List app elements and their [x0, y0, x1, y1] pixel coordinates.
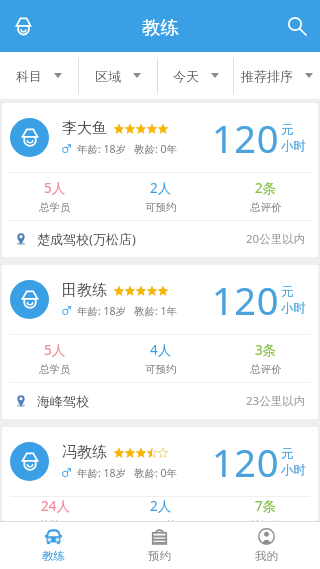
staticText: 海峰驾校 [37, 393, 89, 409]
staticText: 冯教练 [62, 443, 107, 462]
staticText: 总学员 [39, 363, 71, 376]
staticText: 2人 [150, 497, 172, 515]
staticText: 元 [281, 284, 294, 300]
button[interactable]: 2条 [213, 173, 318, 220]
staticText: 推荐排序 [241, 68, 293, 84]
staticText: 小时 [281, 138, 306, 154]
staticText: 年龄: 18岁 [77, 304, 127, 318]
staticText: 科目 [16, 68, 42, 84]
button[interactable]: 今天 [158, 52, 233, 99]
staticText: 120 [212, 274, 280, 326]
button[interactable]: 5人 [2, 173, 108, 220]
staticText: 2人 [150, 179, 172, 197]
button[interactable]: 4人 [108, 335, 213, 382]
staticText: 可预约 [145, 201, 177, 214]
staticText: 李大鱼 [62, 119, 107, 138]
staticText: 20公里以内 [246, 231, 306, 247]
staticText: 楚成驾校(万松店) [37, 230, 136, 248]
staticText: 教龄: 0年 [134, 142, 178, 156]
staticText: 24人 [41, 497, 70, 515]
staticText: 预约 [148, 549, 171, 563]
staticText: 我的 [255, 549, 278, 563]
staticText: 3条 [255, 341, 277, 359]
staticText: 5人 [44, 341, 66, 359]
staticText: 可预约 [145, 363, 177, 376]
staticText: 元 [281, 446, 294, 462]
staticText: 年龄: 18岁 [77, 466, 127, 480]
button[interactable]: Coach profile [3, 6, 43, 46]
staticText: 田教练 [62, 281, 107, 300]
staticText: 总学员 [39, 519, 71, 521]
staticText: 元 [281, 122, 294, 138]
staticText: 年龄: 18岁 [77, 142, 127, 156]
staticText: 120 [212, 436, 280, 488]
button[interactable]: 预约 [106, 522, 213, 569]
staticText: 教龄: 1年 [134, 304, 178, 318]
staticText: 今天 [173, 68, 199, 84]
button[interactable]: 5人 [2, 335, 108, 382]
staticText: 教练 [142, 16, 179, 39]
button[interactable]: 7条 [213, 497, 318, 521]
staticText: 总评价 [250, 201, 282, 214]
button[interactable]: 我的 [213, 522, 320, 569]
staticText: 7条 [255, 497, 277, 515]
button[interactable]: 冯教练 [2, 427, 318, 521]
staticText: 教练 [42, 549, 65, 563]
staticText: 120 [212, 112, 280, 164]
staticText: 教龄: 0年 [134, 466, 178, 480]
staticText: 23公里以内 [246, 393, 306, 409]
button[interactable]: 2人 [108, 173, 213, 220]
button[interactable]: 2人 [108, 497, 213, 521]
staticText: 2条 [255, 179, 277, 197]
staticText: 总学员 [39, 201, 71, 214]
button[interactable]: 李大鱼 [2, 103, 318, 257]
button[interactable]: 3条 [213, 335, 318, 382]
staticText: 5人 [44, 179, 66, 197]
staticText: 可预约 [145, 519, 177, 521]
staticText: 总评价 [250, 519, 282, 521]
staticText: 总评价 [250, 363, 282, 376]
button[interactable]: 24人 [2, 497, 108, 521]
staticText: 区域 [95, 68, 121, 84]
button[interactable]: 教练 [0, 522, 106, 569]
button[interactable]: Search [277, 6, 317, 46]
staticText: 4人 [150, 341, 172, 359]
button[interactable]: 区域 [79, 52, 157, 99]
staticText: 小时 [281, 462, 306, 478]
staticText: 小时 [281, 300, 306, 316]
button[interactable]: 推荐排序 [234, 52, 320, 99]
button[interactable]: 科目 [0, 52, 78, 99]
button[interactable]: 田教练 [2, 265, 318, 419]
